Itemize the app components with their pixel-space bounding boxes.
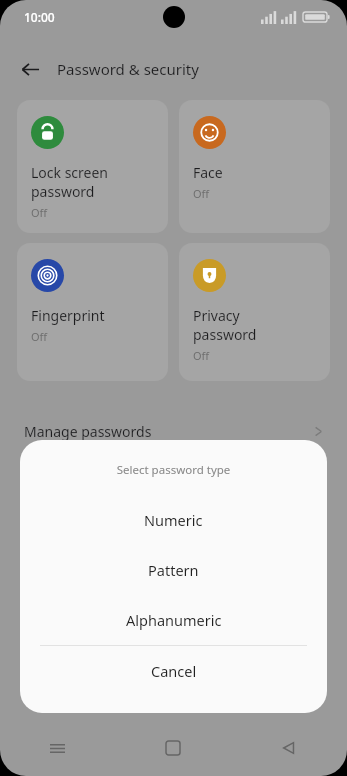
button[interactable]: Privacy password bbox=[179, 243, 330, 381]
button[interactable]: Recent apps bbox=[0, 728, 115, 768]
button[interactable]: Home bbox=[115, 728, 231, 768]
staticText: Password & security bbox=[57, 59, 199, 79]
staticText: Alphanumeric bbox=[126, 610, 222, 630]
staticText: Lock screen password bbox=[31, 163, 109, 201]
button[interactable]: Pattern bbox=[20, 545, 327, 595]
staticText: Pattern bbox=[148, 560, 199, 580]
staticText: Off bbox=[193, 348, 210, 363]
staticText: Cancel bbox=[151, 661, 197, 681]
staticText: Face bbox=[193, 163, 223, 182]
staticText: Numeric bbox=[144, 510, 203, 530]
staticText: 10:00 bbox=[24, 9, 55, 25]
staticText: Privacy password bbox=[193, 306, 257, 344]
staticText: Select password type bbox=[20, 462, 327, 478]
button[interactable]: Cancel bbox=[20, 646, 327, 696]
staticText: Off bbox=[31, 205, 48, 220]
button[interactable]: Manage passwords bbox=[0, 405, 347, 457]
button[interactable]: Lock screen password bbox=[17, 100, 168, 233]
button[interactable]: Numeric bbox=[20, 495, 327, 545]
staticText: Manage passwords bbox=[24, 422, 152, 441]
button[interactable]: Back bbox=[12, 51, 48, 87]
staticText: Off bbox=[193, 186, 210, 201]
button[interactable]: Back bbox=[231, 728, 347, 768]
button[interactable]: Fingerprint bbox=[17, 243, 168, 381]
button[interactable]: Alphanumeric bbox=[20, 595, 327, 645]
button[interactable]: Face bbox=[179, 100, 330, 233]
staticText: Off bbox=[31, 329, 48, 344]
staticText: Fingerprint bbox=[31, 306, 105, 325]
